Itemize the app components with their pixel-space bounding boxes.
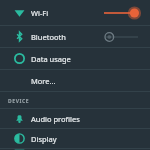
staticText: Display [31, 134, 57, 144]
button[interactable]: Bluetooth off [104, 31, 140, 43]
button[interactable]: Audio profiles [0, 109, 150, 128]
button[interactable]: Bluetooth [0, 26, 150, 47]
button[interactable]: Data usage [0, 48, 150, 69]
button[interactable]: Wi-Fi on [104, 7, 140, 19]
staticText: Audio profiles [31, 114, 80, 124]
staticText: Bluetooth [31, 32, 66, 42]
staticText: Wi-Fi [31, 8, 49, 18]
staticText: More... [31, 76, 56, 86]
staticText: DEVICE [8, 98, 30, 105]
button[interactable]: Display [0, 129, 150, 148]
button[interactable]: More... [0, 70, 150, 91]
button[interactable]: Wi-Fi [0, 0, 150, 25]
staticText: Data usage [31, 54, 71, 64]
button[interactable]: Storage [0, 149, 150, 150]
